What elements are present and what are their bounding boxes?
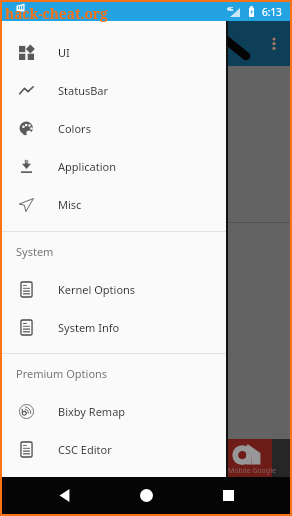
button[interactable]: UI (2, 33, 226, 71)
staticText: 6:13 (262, 5, 282, 19)
button[interactable]: Recents (208, 477, 248, 514)
staticText: Misc (58, 197, 82, 212)
staticText: Bixby Remap (58, 404, 126, 419)
button[interactable]: CSC Editor (2, 430, 226, 468)
button[interactable]: Back (44, 477, 84, 514)
staticText: Application (58, 159, 116, 174)
staticText: hack-cheat.org (5, 4, 108, 23)
staticText: StatusBar (58, 83, 109, 98)
button[interactable]: Bixby Remap (2, 392, 226, 430)
staticText: UI (58, 45, 70, 60)
staticText: Kernel Options (58, 282, 136, 297)
button[interactable] (2, 21, 290, 477)
button[interactable]: Home (126, 477, 166, 514)
staticText: Colors (58, 121, 91, 136)
button[interactable]: StatusBar (2, 71, 226, 109)
staticText: System (16, 244, 54, 259)
button[interactable]: Application (2, 147, 226, 185)
button[interactable]: Kernel Options (2, 270, 226, 308)
staticText: CSC Editor (58, 442, 112, 457)
staticText: Premium Options (16, 366, 108, 381)
button[interactable]: System Info (2, 308, 226, 346)
button[interactable]: More options (264, 30, 284, 60)
staticText: Mobile Google (228, 466, 276, 476)
button[interactable]: Misc (2, 185, 226, 223)
staticText: 4G (227, 6, 234, 13)
staticText: System Info (58, 320, 120, 335)
button[interactable]: Colors (2, 109, 226, 147)
